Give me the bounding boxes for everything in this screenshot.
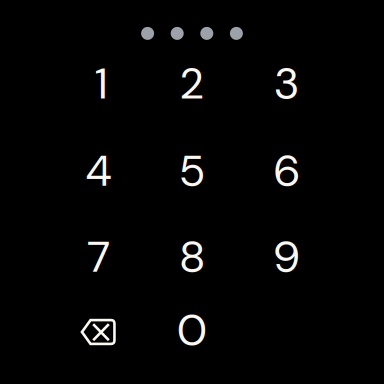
button[interactable]: 0 bbox=[145, 287, 239, 373]
button[interactable]: 9 bbox=[240, 213, 333, 300]
staticText: 3 bbox=[274, 55, 299, 112]
staticText: 9 bbox=[273, 228, 299, 285]
button[interactable]: 2 bbox=[145, 40, 239, 127]
button[interactable]: 6 bbox=[240, 127, 333, 214]
button[interactable]: 7 bbox=[52, 213, 145, 300]
button[interactable]: 5 bbox=[145, 127, 239, 214]
button[interactable]: 4 bbox=[52, 127, 145, 214]
staticText: 5 bbox=[179, 142, 204, 199]
staticText: 0 bbox=[177, 301, 207, 359]
staticText: 2 bbox=[180, 55, 204, 112]
staticText: 6 bbox=[273, 142, 299, 199]
button[interactable]: 1 bbox=[52, 40, 145, 127]
button[interactable]: 3 bbox=[240, 40, 333, 127]
button[interactable]: 8 bbox=[145, 213, 239, 300]
staticText: 8 bbox=[179, 228, 204, 285]
staticText: 1 bbox=[95, 55, 107, 112]
staticText: 7 bbox=[87, 228, 110, 285]
button[interactable]: Delete bbox=[51, 289, 145, 375]
staticText: 4 bbox=[85, 142, 111, 199]
